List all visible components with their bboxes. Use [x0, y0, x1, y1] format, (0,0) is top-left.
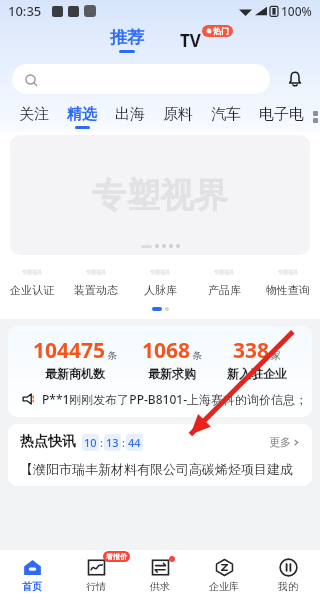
staticText: 热点快讯: [20, 433, 76, 451]
button[interactable]: All categories: [313, 102, 320, 132]
staticText: 物性查询: [266, 283, 310, 297]
staticText: 更多: [269, 435, 291, 449]
staticText: 104475: [33, 336, 106, 365]
staticText: 专塑视界: [150, 269, 170, 275]
button[interactable]: 出海: [106, 105, 154, 129]
staticText: 专塑视界: [214, 269, 234, 275]
staticText: 看报价: [106, 552, 127, 561]
button[interactable]: 更多: [269, 435, 300, 449]
staticText: :: [122, 435, 125, 450]
button[interactable]: 看报价: [64, 550, 128, 600]
button[interactable]: 104475: [8, 326, 312, 417]
staticText: 【濮阳市瑞丰新材料有限公司高碳烯烃项目建成: [20, 461, 293, 477]
button[interactable]: 专塑视界: [256, 264, 320, 299]
button[interactable]: 企业库: [192, 550, 256, 600]
staticText: 专塑视界: [278, 269, 298, 275]
staticText: 企业库: [209, 580, 239, 593]
staticText: 精选: [67, 105, 97, 124]
staticText: 热门: [213, 26, 229, 36]
button[interactable]: 精选: [58, 105, 106, 129]
staticText: 最新商机数: [45, 366, 105, 381]
button[interactable]: 原料: [154, 105, 202, 129]
button[interactable]: [12, 64, 270, 94]
staticText: 行情: [86, 580, 106, 593]
staticText: 企业认证: [10, 283, 54, 297]
staticText: 专塑视界: [92, 174, 228, 217]
staticText: 关注: [19, 105, 49, 124]
staticText: 推荐: [110, 27, 144, 48]
staticText: 人脉库: [144, 283, 177, 297]
button[interactable]: TV: [174, 29, 217, 52]
staticText: 最新求购: [148, 366, 196, 381]
staticText: 338: [233, 336, 270, 365]
button[interactable]: 我的: [256, 550, 320, 600]
button[interactable]: 专塑视界: [10, 135, 310, 255]
staticText: 首页: [22, 580, 42, 593]
staticText: 条: [192, 349, 202, 362]
button[interactable]: 汽车: [202, 105, 250, 129]
staticText: 汽车: [211, 105, 241, 124]
staticText: 100%: [281, 3, 312, 19]
staticText: TV: [180, 29, 201, 52]
staticText: 10:35: [8, 2, 42, 20]
staticText: 专塑视界: [86, 269, 106, 275]
staticText: 电子电: [259, 105, 304, 124]
button[interactable]: 热点快讯: [8, 424, 312, 486]
staticText: 原料: [163, 105, 193, 124]
staticText: P**1刚刚发布了PP-B8101-上海赛科的询价信息；: [42, 391, 307, 407]
button[interactable]: 首页: [0, 550, 64, 600]
staticText: 供求: [150, 580, 170, 593]
button[interactable]: Notifications: [280, 64, 310, 94]
staticText: 装置动态: [74, 283, 118, 297]
button[interactable]: 专塑视界: [192, 264, 256, 299]
button[interactable]: 推荐: [104, 27, 150, 53]
button[interactable]: 专塑视界: [128, 264, 192, 299]
button[interactable]: 电子电: [250, 105, 313, 129]
staticText: 家: [271, 349, 281, 362]
staticText: 出海: [115, 105, 145, 124]
staticText: 产品库: [208, 283, 241, 297]
staticText: 专塑视界: [22, 269, 42, 275]
staticText: 1068: [142, 336, 191, 365]
staticText: 44: [128, 435, 141, 450]
staticText: 条: [107, 349, 117, 362]
button[interactable]: 关注: [10, 105, 58, 129]
staticText: 我的: [278, 580, 298, 593]
staticText: :: [100, 435, 103, 450]
button[interactable]: 专塑视界: [64, 264, 128, 299]
staticText: 10: [84, 435, 97, 450]
staticText: 新入驻企业: [227, 366, 287, 381]
button[interactable]: 供求: [128, 550, 192, 600]
button[interactable]: 专塑视界: [0, 264, 64, 299]
staticText: 13: [106, 435, 119, 450]
